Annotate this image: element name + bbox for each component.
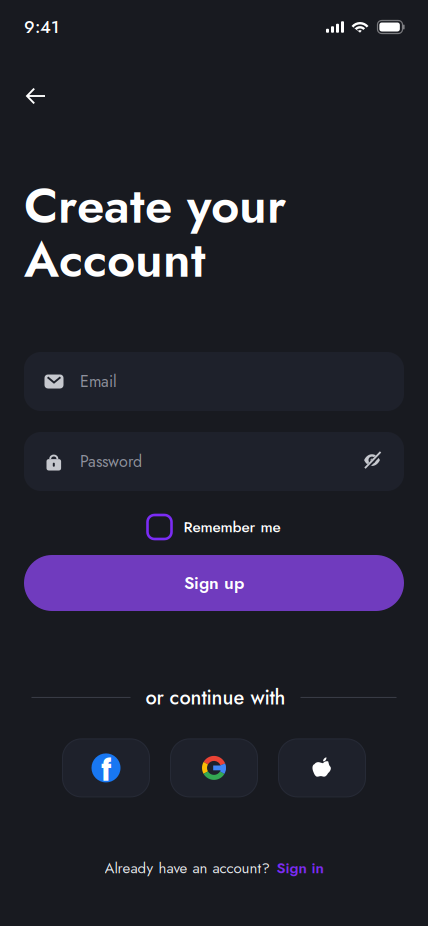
staticText: Already have an account? <box>104 857 269 879</box>
button[interactable]: Sign up <box>24 555 404 611</box>
staticText: Sign in <box>276 857 323 879</box>
staticText: Password <box>80 450 142 473</box>
staticText: Create your <box>24 170 286 241</box>
button[interactable]: Remember me <box>147 508 280 546</box>
button[interactable]: Sign up with Apple <box>278 739 365 797</box>
button[interactable]: Sign up with Facebook <box>62 739 149 797</box>
staticText: f <box>101 750 112 791</box>
staticText: or continue with <box>145 683 285 712</box>
button[interactable]: Back <box>0 73 64 119</box>
staticText: 9:41 <box>24 14 59 39</box>
button[interactable]: Already have an account? <box>104 849 323 887</box>
staticText: Sign up <box>184 570 244 595</box>
button[interactable]: Sign up with Google <box>170 739 257 797</box>
staticText: Account <box>24 224 206 295</box>
staticText: Email <box>80 370 117 393</box>
staticText: Remember me <box>183 516 280 538</box>
